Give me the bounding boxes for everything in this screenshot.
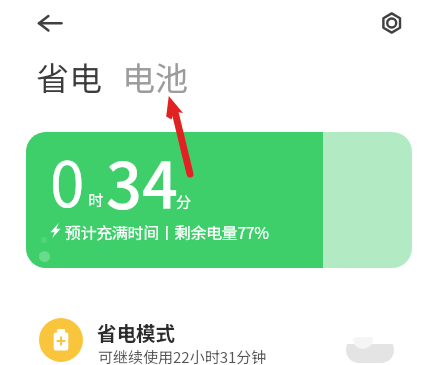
button[interactable]: 电池 xyxy=(122,53,188,101)
staticText: 0 xyxy=(50,135,85,225)
staticText: 预计充满时间丨剩余电量77% xyxy=(65,220,269,243)
button[interactable]: Back xyxy=(32,7,65,40)
staticText: 时 xyxy=(88,189,104,211)
button[interactable]: Toggle power saving mode xyxy=(346,337,394,363)
button[interactable] xyxy=(26,132,412,268)
button[interactable] xyxy=(0,308,430,365)
staticText: 省电模式 xyxy=(97,318,176,346)
staticText: 省电 xyxy=(36,53,102,101)
staticText: 分 xyxy=(176,191,192,213)
button[interactable]: 省电 xyxy=(36,53,102,101)
staticText: 34 xyxy=(106,136,178,227)
button[interactable]: Settings xyxy=(375,7,408,40)
staticText: 电池 xyxy=(122,53,188,101)
staticText: 可继续使用22小时31分钟 xyxy=(98,346,267,365)
